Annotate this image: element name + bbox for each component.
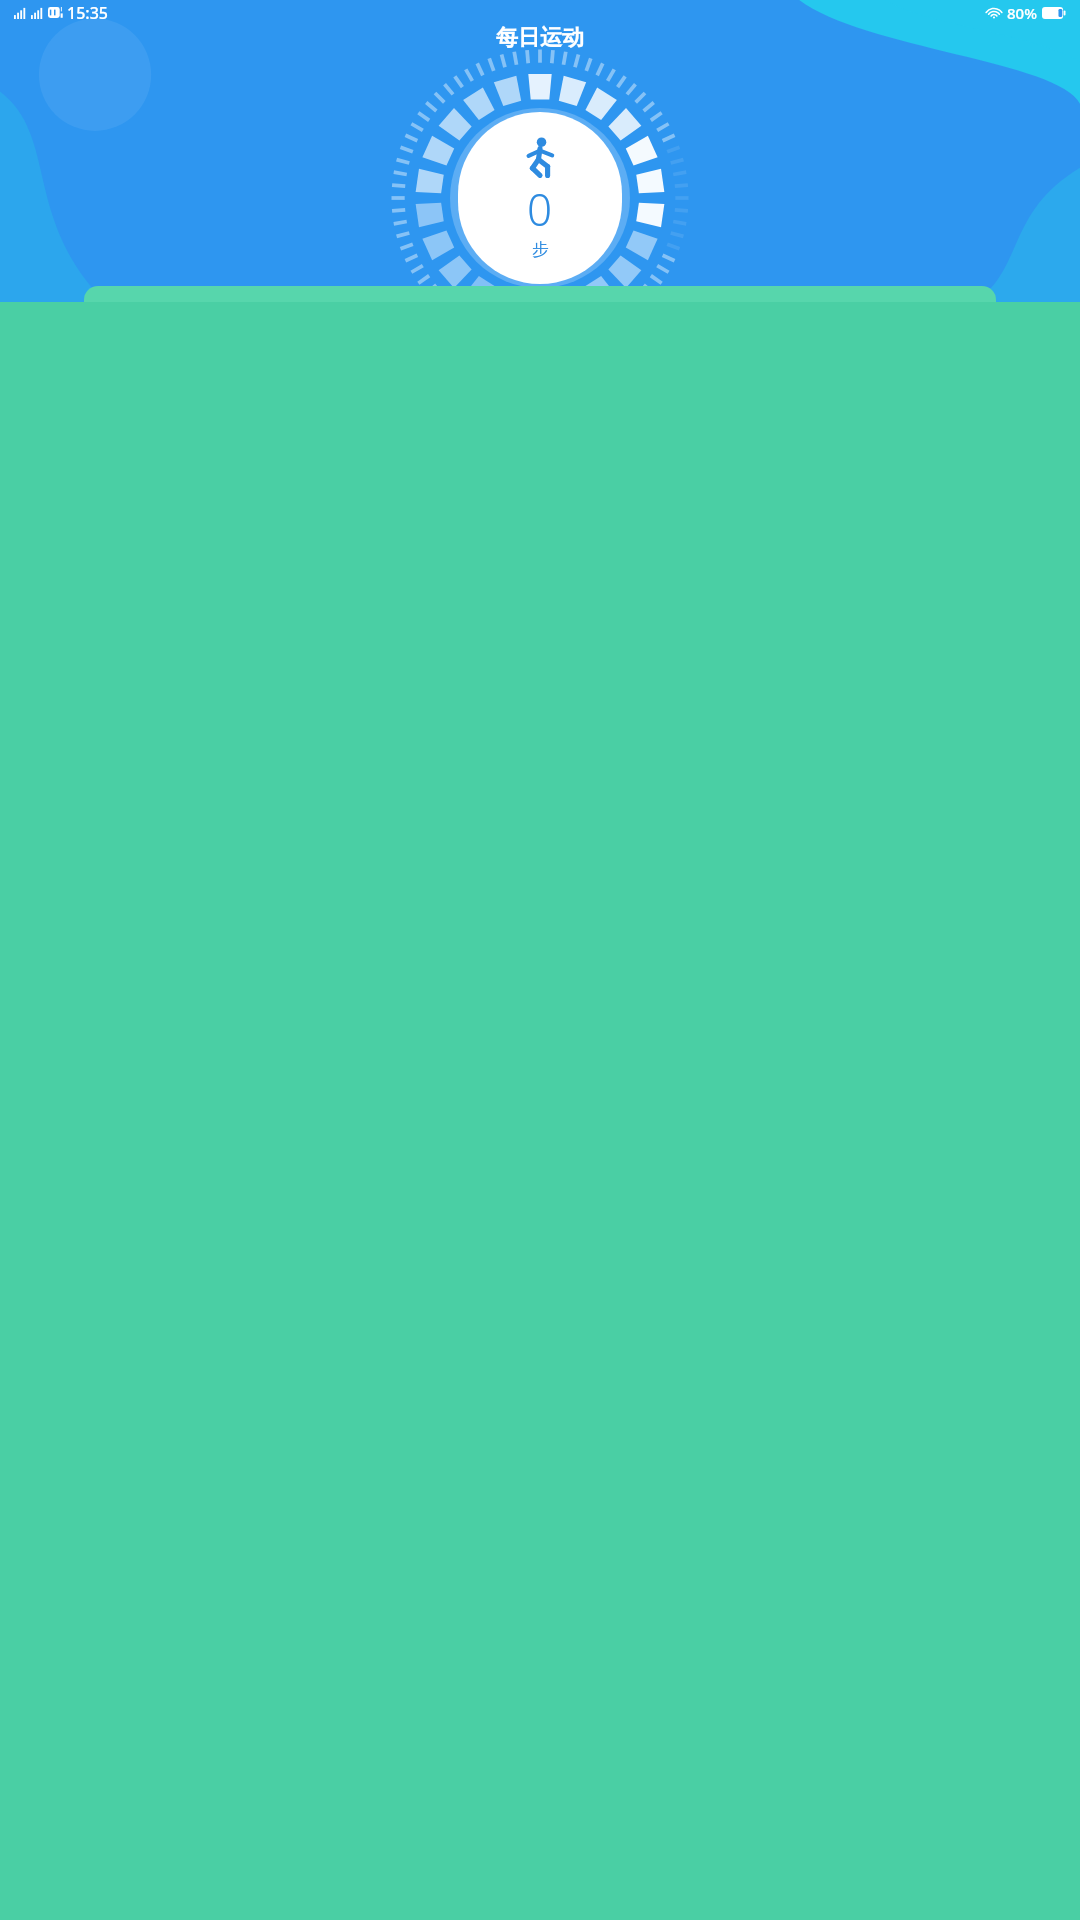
- staticText: 每日运动: [496, 24, 584, 52]
- staticText: 80%: [1007, 3, 1037, 23]
- button[interactable]: Step counter: [390, 48, 690, 348]
- staticText: 步: [532, 239, 549, 260]
- staticText: 15:35: [67, 2, 108, 24]
- button[interactable]: [84, 286, 996, 306]
- staticText: 0: [527, 179, 553, 239]
